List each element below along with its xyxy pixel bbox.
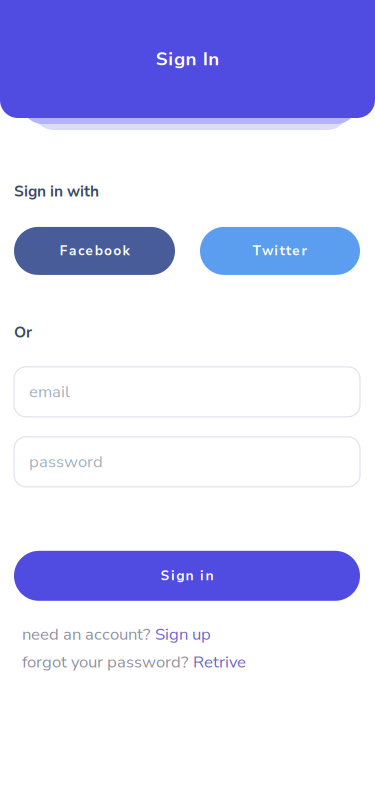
staticText: Sign in [161, 567, 213, 585]
staticText: Retrive [193, 651, 246, 673]
staticText: Sign In [156, 46, 219, 72]
staticText: password [29, 450, 103, 473]
staticText: Or [14, 322, 32, 343]
staticText: Sign in with [14, 181, 99, 202]
staticText: forgot your password? [22, 651, 188, 673]
button[interactable]: need an account? [14, 623, 211, 645]
button[interactable]: Facebook [14, 227, 175, 275]
button[interactable]: Sign in [14, 551, 360, 601]
staticText: Sign up [155, 623, 211, 645]
staticText: email [29, 380, 70, 403]
staticText: Facebook [59, 242, 130, 260]
staticText: need an account? [22, 623, 150, 645]
staticText: Twitter [253, 242, 307, 260]
button[interactable]: forgot your password? [14, 651, 246, 673]
button[interactable]: Twitter [200, 227, 360, 275]
